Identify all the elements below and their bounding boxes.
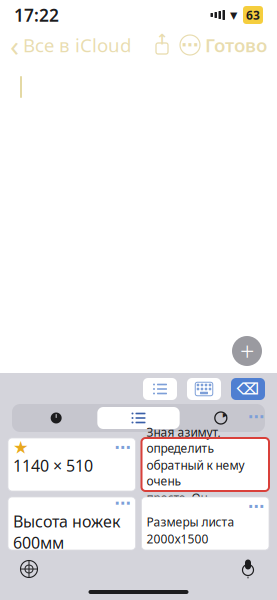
button[interactable]: Готово [205, 29, 267, 61]
button[interactable]: Add [227, 331, 267, 371]
button[interactable]: ‹ [10, 21, 131, 68]
staticText: ⋯ [114, 494, 130, 512]
staticText: Высота ножек 600мм [13, 511, 120, 553]
button[interactable]: Refresh [180, 407, 262, 429]
staticText: ⋯ [181, 35, 198, 55]
button[interactable]: List format [143, 378, 177, 400]
staticText: Все в iCloud [23, 33, 131, 57]
button[interactable]: Delete [231, 378, 265, 400]
staticText: обратный к нему очень [146, 457, 244, 489]
staticText: 17:22 [14, 3, 59, 26]
staticText: ▾ [230, 7, 237, 23]
staticText: 2000x1500 [146, 531, 208, 547]
staticText: ▸ [223, 409, 228, 420]
staticText: ↑ [156, 31, 168, 48]
button[interactable]: Dictate [233, 554, 263, 584]
staticText: ⋯ [114, 438, 130, 457]
staticText: Готово [205, 33, 267, 57]
button[interactable]: Share [149, 32, 175, 58]
button[interactable]: Shortcuts [97, 407, 180, 429]
staticText: 63 [246, 7, 260, 23]
staticText: 1140 × 510 [13, 455, 93, 476]
staticText: ‹ [10, 25, 19, 64]
staticText: ⋯ [248, 497, 264, 516]
staticText: Размеры листа [146, 514, 234, 530]
staticText: Зная азимут, определить [146, 424, 220, 456]
button[interactable]: Change keyboard [14, 554, 44, 584]
staticText: ⋯ [248, 408, 264, 426]
staticText: + [240, 334, 254, 368]
button[interactable]: Recent [15, 407, 97, 429]
button[interactable]: More [175, 30, 205, 60]
staticText: ★ [13, 438, 29, 457]
staticText: ⌫ [236, 380, 259, 398]
staticText: просто. Он находится в с... [146, 490, 232, 522]
button[interactable]: Keyboard [187, 378, 221, 400]
